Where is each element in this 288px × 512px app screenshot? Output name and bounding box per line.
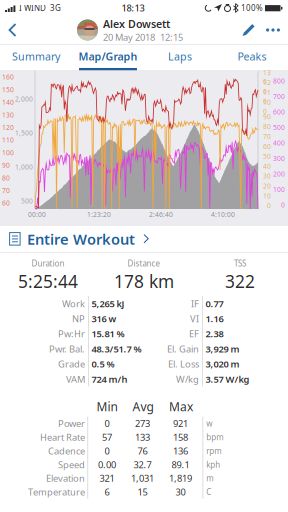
staticText: 100% [241,3,263,13]
staticText: 20 [263,181,271,190]
staticText: 1.16 [206,312,224,325]
staticText: 110 [263,88,271,106]
staticText: 5,265 kJ [92,297,125,310]
staticText: Cadence [48,445,85,457]
staticText: VAM [66,373,85,385]
staticText: 0.77 [206,297,224,310]
staticText: 0 [105,417,110,430]
staticText: I WIND [19,3,46,13]
staticText: m [206,473,213,483]
staticText: Pw:Hr [58,328,85,340]
staticText: 15 [138,486,148,498]
staticText: Distance [127,258,160,269]
staticText: Heart Rate [40,431,85,443]
staticText: 48.3/51.7 % [92,343,142,355]
staticText: 32.7 [134,458,152,471]
staticText: W/kg [176,373,199,385]
staticText: 1,819 [169,472,192,484]
staticText: 1:23:20 [87,210,111,219]
staticText: Map/Graph [78,49,137,63]
staticText: Pwr. Bal. [49,343,85,355]
staticText: Grade [58,358,85,370]
staticText: 76 [138,445,148,457]
staticText: Temperature [28,486,85,498]
staticText: 89.1 [172,458,190,471]
staticText: 4:10:00 [211,210,235,219]
staticText: Alex Dowsett [103,17,170,31]
staticText: 200 [273,170,285,178]
staticText: w [206,418,212,429]
staticText: Power [58,417,85,430]
button[interactable]: Back [0,16,24,44]
staticText: 321 [100,472,115,484]
button[interactable]: Entire Workout [0,225,288,252]
staticText: kph [206,459,220,470]
staticText: bpm [206,432,223,442]
staticText: 120 [2,123,14,132]
staticText: 90 [263,112,271,121]
staticText: Elevation [46,472,85,484]
button[interactable]: Laps [144,44,216,70]
staticText: Max [169,399,193,414]
staticText: 700 [273,92,285,101]
staticText: 150 [2,85,14,94]
staticText: 1,500 [15,129,33,137]
staticText: 2.38 [206,328,224,340]
staticText: 3,020 m [206,358,240,370]
staticText: Peaks [237,49,266,63]
staticText: NP [72,312,85,325]
staticText: 100 [273,185,285,194]
staticText: C [206,487,211,497]
staticText: 136 [173,445,188,457]
staticText: 0 [281,201,285,209]
staticText: 600 [273,108,285,116]
staticText: El. Gain [167,343,199,355]
staticText: Summary [12,49,60,63]
staticText: rpm [206,445,221,456]
staticText: EF [189,328,199,340]
button[interactable]: More options [262,16,288,44]
staticText: 3G [50,3,61,13]
staticText: 130 [2,110,14,119]
staticText: 30 [176,486,186,498]
staticText: 178 km [114,270,174,293]
staticText: 273 [135,417,150,430]
staticText: 50 [263,152,271,161]
staticText: 800 [273,77,285,85]
staticText: Avg [132,399,153,414]
staticText: 80 [263,122,271,131]
staticText: 0 [105,445,110,457]
staticText: 130 [263,68,271,86]
staticText: 500 [273,123,285,132]
button[interactable]: Edit [236,16,262,44]
staticText: 18:13 [121,2,144,14]
staticText: 100 [2,148,14,157]
staticText: 0.00 [98,458,116,471]
button[interactable]: Summary [0,44,72,70]
staticText: VI [190,312,199,325]
staticText: 500 [21,197,33,205]
staticText: 70 [2,186,10,195]
staticText: 1,031 [131,472,154,484]
staticText: 10 [263,191,271,200]
staticText: 20 May 2018 [103,31,155,43]
staticText: 30 [263,172,271,180]
staticText: 3.57 W/kg [206,373,250,385]
staticText: 60 [2,199,10,207]
staticText: 120 [263,78,271,96]
button[interactable]: Map/Graph [72,44,144,70]
staticText: 70 [263,132,271,141]
staticText: 110 [2,136,14,144]
button[interactable]: Peaks [216,44,288,70]
staticText: 90 [2,161,10,170]
staticText: 1,000 [15,163,33,171]
staticText: TSS [234,258,246,269]
staticText: IF [191,297,199,310]
staticText: 158 [173,431,188,443]
staticText: 921 [173,417,188,430]
staticText: 3,929 m [206,343,240,355]
staticText: 133 [135,431,150,443]
staticText: 400 [273,139,285,147]
staticText: 160 [2,73,14,81]
staticText: Entire Workout [27,229,135,249]
